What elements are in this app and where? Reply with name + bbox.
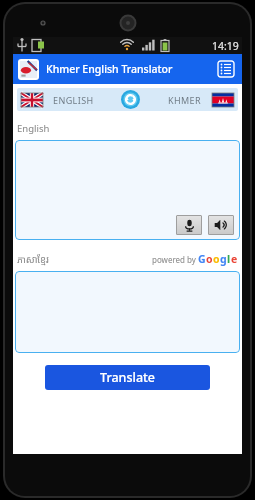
staticText: Khmer English Translator [46, 62, 173, 76]
button[interactable]: Speak text [208, 215, 234, 235]
button[interactable]: KHMER [168, 94, 202, 106]
button[interactable]: Translate [45, 365, 210, 390]
button[interactable]: Voice input [176, 215, 202, 235]
button[interactable]: Swap languages [121, 90, 140, 109]
staticText: Translate [100, 369, 155, 386]
button[interactable]: ENGLISH [53, 94, 94, 106]
staticText: English [17, 122, 50, 135]
staticText: e [231, 252, 238, 266]
staticText: 14:19 [212, 39, 239, 53]
button[interactable] [15, 271, 240, 353]
button[interactable] [21, 93, 43, 107]
staticText: powered by [152, 254, 198, 265]
staticText: l [227, 252, 231, 266]
staticText: g [220, 252, 227, 266]
staticText: o [206, 252, 213, 266]
staticText: G [198, 252, 206, 266]
button[interactable] [212, 93, 234, 107]
button[interactable]: Menu [215, 58, 237, 80]
staticText: o [213, 252, 220, 266]
button[interactable]: Voice input [15, 140, 240, 240]
staticText: ភាសាខ្មែរ [17, 253, 49, 266]
